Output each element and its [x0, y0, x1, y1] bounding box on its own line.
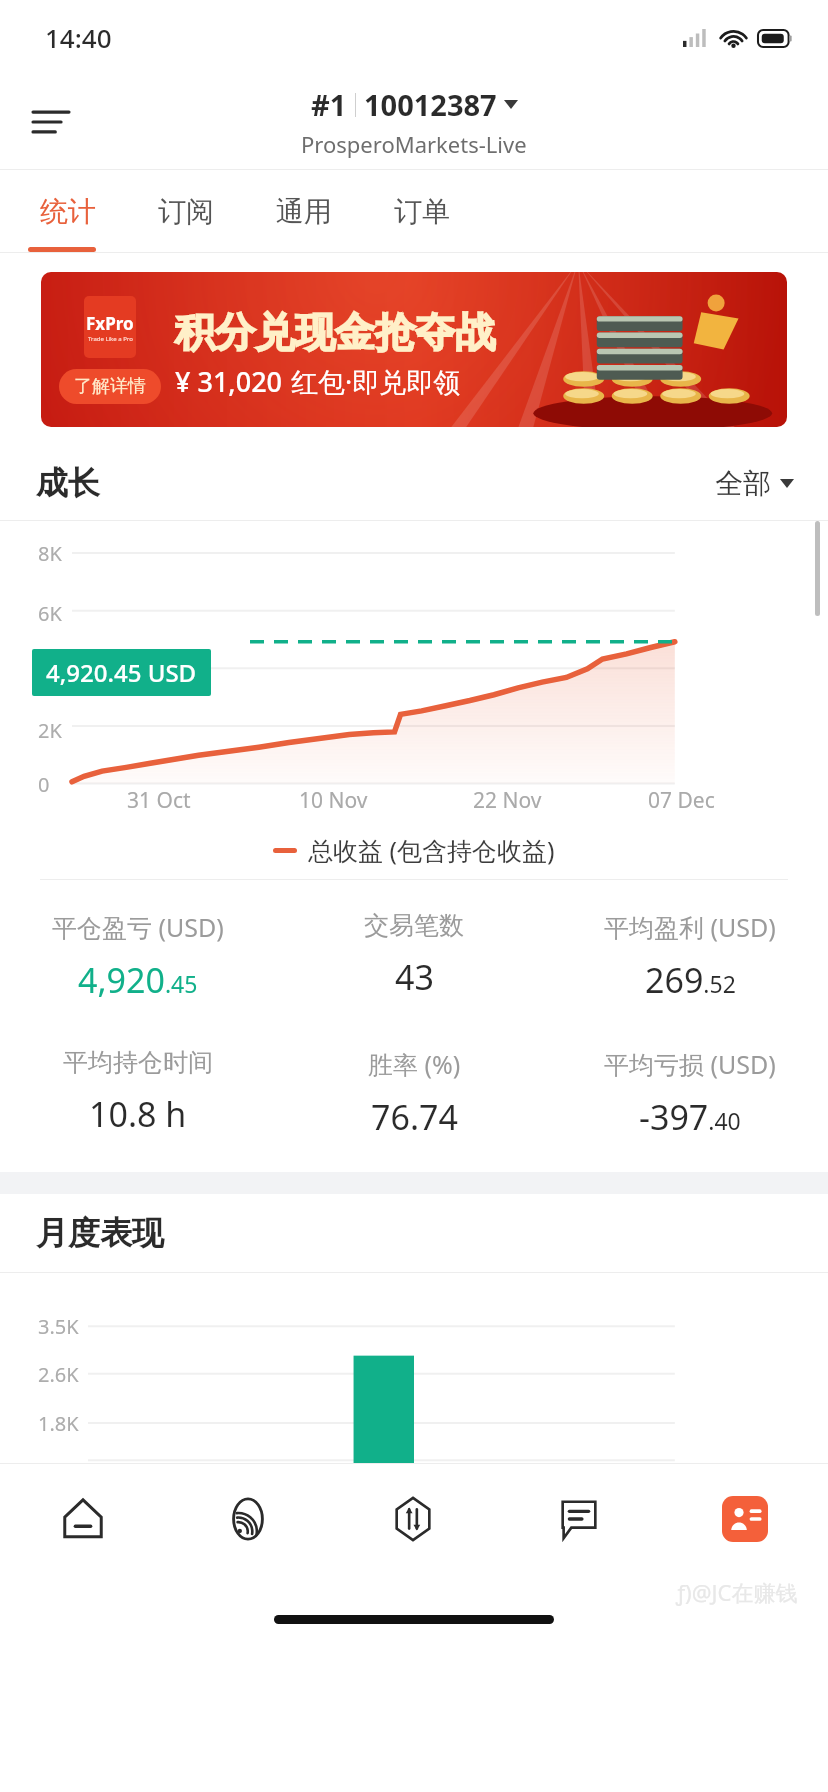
staticText: Trade Like a Pro: [88, 335, 133, 343]
button[interactable]: 订单: [380, 170, 464, 252]
button[interactable]: 通用: [262, 170, 346, 252]
staticText: 订单: [394, 194, 450, 229]
button[interactable]: #1: [301, 85, 527, 159]
button[interactable]: 统计: [26, 170, 110, 252]
button[interactable]: 平仓盈亏 (USD): [0, 910, 276, 1003]
staticText: 通用: [276, 194, 332, 229]
staticText: #1: [311, 85, 347, 124]
button[interactable]: 平均盈利 (USD): [552, 910, 828, 1003]
staticText: 平均盈利 (USD): [604, 910, 776, 944]
button[interactable]: 交易笔数: [276, 910, 552, 1000]
button[interactable]: Messages: [496, 1464, 662, 1574]
staticText: 2.6K: [38, 1361, 79, 1388]
staticText: 10 Nov: [299, 786, 368, 815]
staticText: 2K: [38, 717, 62, 744]
button[interactable]: Home: [0, 1464, 165, 1574]
staticText: 平均持仓时间: [63, 1047, 213, 1078]
staticText: 平均亏损 (USD): [604, 1047, 776, 1081]
button[interactable]: Menu: [22, 93, 80, 151]
staticText: 积分兑现金抢夺战: [175, 307, 495, 357]
staticText: 4K: [38, 658, 62, 685]
button[interactable]: Trade: [330, 1464, 496, 1574]
staticText: 订阅: [158, 194, 214, 229]
button[interactable]: 平均亏损 (USD): [552, 1047, 828, 1140]
staticText: 76.74: [371, 1094, 458, 1140]
staticText: ƒ)@JC在赚钱: [676, 1577, 798, 1607]
staticText: 了解详情: [74, 375, 146, 398]
staticText: 10.8 h: [89, 1091, 187, 1137]
staticText: 0: [38, 771, 50, 798]
staticText: 交易笔数: [364, 910, 464, 941]
staticText: 10012387: [364, 85, 497, 124]
staticText: -397.40: [639, 1094, 741, 1140]
staticText: 成长: [36, 463, 100, 503]
staticText: 统计: [40, 194, 96, 229]
staticText: 6K: [38, 600, 62, 627]
staticText: 269.52: [645, 957, 736, 1003]
staticText: ProsperoMarkets-Live: [301, 129, 527, 159]
staticText: 平仓盈亏 (USD): [52, 910, 224, 944]
staticText: 全部: [715, 466, 771, 501]
staticText: ¥ 31,020: [175, 363, 283, 400]
staticText: 胜率 (%): [368, 1047, 461, 1081]
staticText: 31 Oct: [127, 786, 191, 815]
button[interactable]: 了解详情: [74, 375, 146, 398]
button[interactable]: 胜率 (%): [276, 1047, 552, 1140]
button[interactable]: Profile: [662, 1464, 828, 1574]
staticText: 4,920.45 USD: [46, 656, 197, 689]
staticText: 红包·即兑即领: [291, 363, 461, 400]
staticText: 8K: [38, 540, 62, 567]
staticText: 22 Nov: [473, 786, 542, 815]
staticText: FxPro: [86, 312, 134, 335]
button[interactable]: 订阅: [144, 170, 228, 252]
button[interactable]: FxPro: [41, 272, 787, 427]
staticText: 3.5K: [38, 1313, 79, 1340]
staticText: 07 Dec: [648, 786, 715, 815]
button[interactable]: Signals: [165, 1464, 330, 1574]
staticText: 1.8K: [38, 1410, 79, 1437]
staticText: 43: [395, 954, 434, 1000]
staticText: 月度表现: [36, 1213, 164, 1253]
button[interactable]: 平均持仓时间: [0, 1047, 276, 1137]
staticText: 4,920.45: [78, 957, 198, 1003]
button[interactable]: 全部: [715, 466, 794, 501]
staticText: 总收益 (包含持仓收益): [308, 833, 555, 867]
staticText: 14:40: [45, 20, 112, 55]
